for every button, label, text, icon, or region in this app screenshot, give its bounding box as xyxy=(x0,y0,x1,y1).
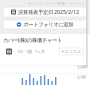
staticText: 1週 xyxy=(26,49,32,54)
staticText: 1日 xyxy=(17,49,23,54)
button[interactable]: テクニカル xyxy=(59,48,83,55)
staticText: 1ヶ月 xyxy=(35,49,45,54)
staticText: テクニカル xyxy=(61,49,81,54)
staticText: カバー(株)の株価チャート xyxy=(3,36,62,44)
button[interactable]: 1ヶ月 xyxy=(35,49,45,54)
staticText: 3,240 xyxy=(77,64,86,69)
staticText: かぶたん カバー株価・チャート xyxy=(28,1,85,6)
staticText: ポートフォリオに追加 xyxy=(23,21,73,28)
button[interactable]: 1日 xyxy=(17,49,23,54)
button[interactable]: Chart type xyxy=(6,48,12,54)
button[interactable]: 決算発表予定日 2025/2/12 xyxy=(3,7,87,17)
button[interactable]: ポートフォリオに追加 xyxy=(3,20,87,29)
staticText: 3,180 xyxy=(77,74,86,80)
staticText: 決算発表予定日 2025/2/12 xyxy=(18,8,79,16)
button[interactable]: 1週 xyxy=(26,49,32,54)
